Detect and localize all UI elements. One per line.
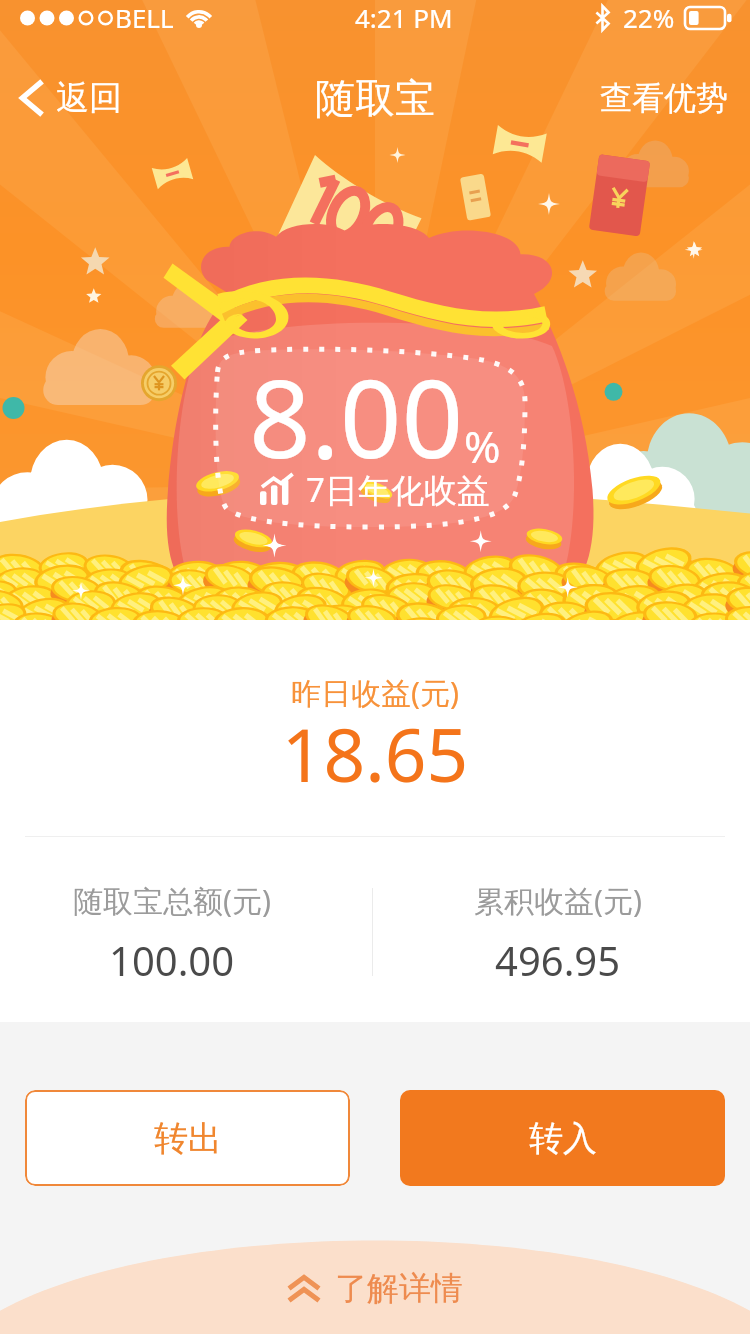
staticText: 转入 [529, 1117, 597, 1160]
button[interactable]: 返回 [0, 69, 136, 127]
staticText: BELL [115, 0, 174, 35]
button[interactable]: 查看优势 [586, 68, 750, 128]
staticText: 18.65 [0, 704, 750, 803]
staticText: 转出 [154, 1117, 222, 1160]
staticText: 22% [623, 0, 675, 35]
staticText: 了解详情 [335, 1268, 463, 1308]
staticText: % [464, 416, 501, 476]
staticText: 返回 [56, 77, 122, 119]
button[interactable]: 转出 [25, 1090, 350, 1186]
button[interactable]: 转入 [400, 1090, 725, 1186]
staticText: 昨日收益(元) [0, 672, 750, 713]
button[interactable]: 了解详情 [267, 1256, 483, 1334]
staticText: 随取宝总额(元) [73, 880, 271, 921]
staticText: 累积收益(元) [474, 880, 642, 921]
staticText: 496.95 [495, 933, 621, 987]
staticText: 8.00 [249, 343, 464, 490]
staticText: 随取宝 [315, 73, 435, 123]
staticText: 4:21 PM [355, 0, 453, 35]
staticText: 100.00 [109, 933, 235, 987]
staticText: 7日年化收益 [306, 467, 490, 512]
